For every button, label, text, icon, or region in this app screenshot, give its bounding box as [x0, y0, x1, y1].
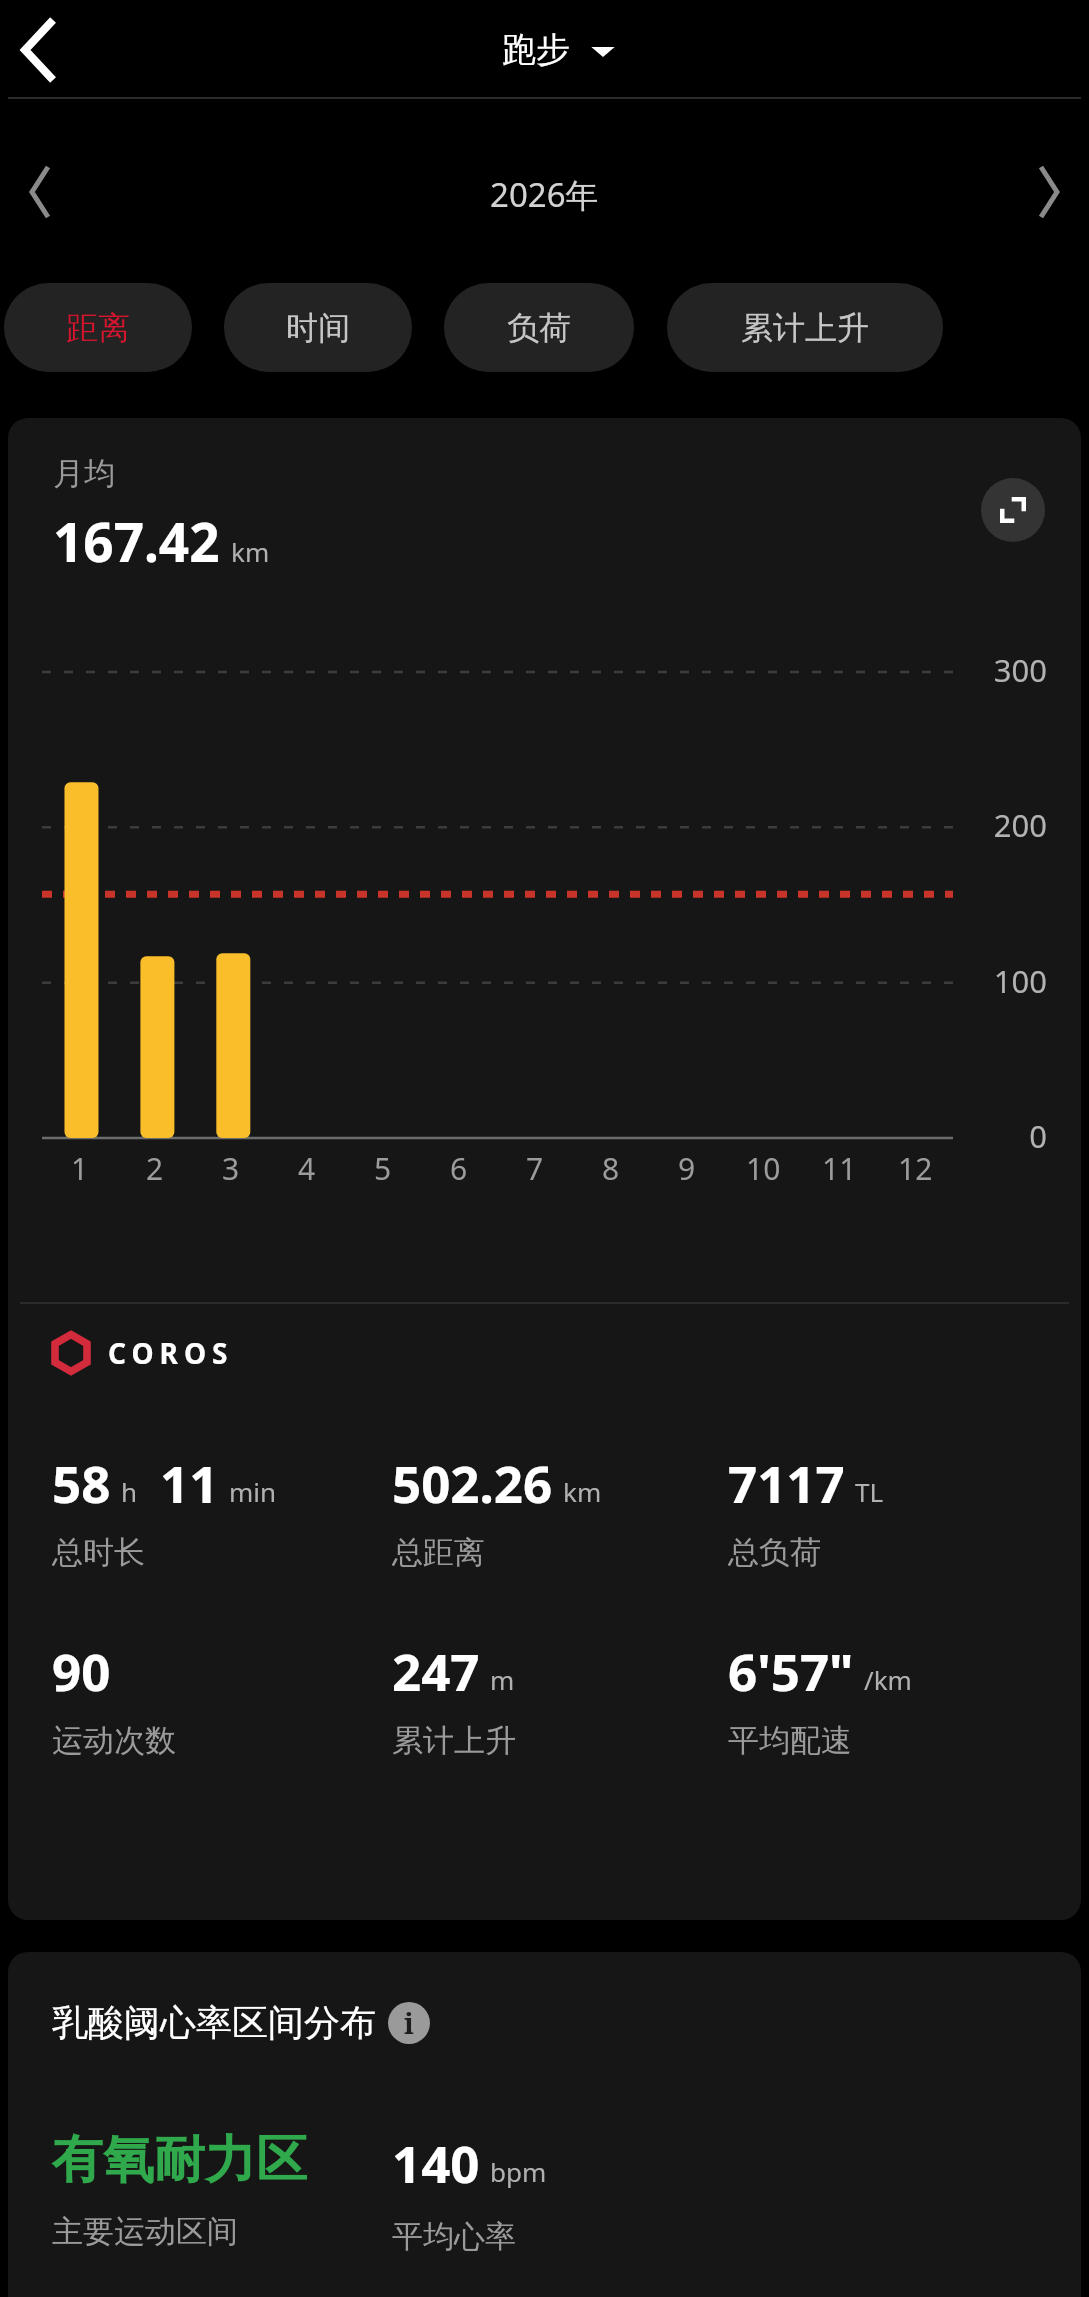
- button[interactable]: 乳酸阈心率区间分布: [52, 2000, 430, 2045]
- staticText: 100: [8, 960, 1047, 1002]
- button[interactable]: 58: [52, 1448, 392, 1572]
- staticText: km: [563, 1474, 602, 1509]
- staticText: 总负荷: [728, 1533, 821, 1572]
- staticText: 5: [374, 1148, 392, 1189]
- staticText: 4: [298, 1148, 316, 1189]
- button[interactable]: Back: [2, 13, 76, 87]
- button[interactable]: 6'57": [728, 1636, 1028, 1760]
- button[interactable]: 负荷: [444, 283, 634, 372]
- staticText: 10: [746, 1148, 781, 1189]
- button[interactable]: 90: [52, 1636, 392, 1760]
- staticText: 58: [52, 1448, 111, 1517]
- staticText: 月均: [53, 454, 115, 493]
- staticText: 7117: [728, 1448, 845, 1517]
- button[interactable]: 7117: [728, 1448, 1028, 1572]
- staticText: 2: [146, 1148, 164, 1189]
- staticText: 167.42: [53, 505, 220, 577]
- staticText: 累计上升: [741, 308, 869, 348]
- staticText: 跑步: [502, 28, 570, 71]
- other: Info: [388, 2002, 430, 2044]
- button[interactable]: 距离: [4, 283, 192, 372]
- staticText: 11: [822, 1148, 857, 1189]
- button[interactable]: 502.26: [392, 1448, 728, 1572]
- button[interactable]: 跑步: [502, 28, 616, 71]
- staticText: h: [121, 1474, 138, 1509]
- staticText: 300: [8, 649, 1047, 691]
- button[interactable]: 累计上升: [667, 283, 943, 372]
- staticText: 1: [71, 1148, 89, 1189]
- button[interactable]: Previous year: [12, 164, 68, 220]
- staticText: i: [404, 2004, 414, 2042]
- staticText: 6'57": [728, 1636, 854, 1705]
- staticText: 6: [450, 1148, 468, 1189]
- staticText: 247: [392, 1636, 480, 1705]
- staticText: 90: [52, 1636, 111, 1705]
- button[interactable]: 有氧耐力区: [52, 2128, 392, 2251]
- staticText: bpm: [490, 2154, 547, 2189]
- staticText: 平均配速: [728, 1721, 852, 1760]
- staticText: 运动次数: [52, 1721, 176, 1760]
- staticText: km: [231, 534, 270, 569]
- button[interactable]: 时间: [224, 283, 412, 372]
- staticText: 主要运动区间: [52, 2212, 238, 2251]
- button[interactable]: Next year: [1021, 164, 1077, 220]
- staticText: /km: [864, 1662, 912, 1697]
- staticText: m: [490, 1662, 515, 1697]
- button[interactable]: Expand chart: [981, 478, 1045, 542]
- button[interactable]: 247: [392, 1636, 728, 1760]
- staticText: TL: [855, 1474, 884, 1509]
- staticText: 8: [602, 1148, 620, 1189]
- staticText: 总时长: [52, 1533, 145, 1572]
- staticText: 总距离: [392, 1533, 485, 1572]
- staticText: 时间: [286, 308, 350, 348]
- staticText: 200: [8, 804, 1047, 846]
- staticText: min: [229, 1474, 277, 1509]
- button[interactable]: 140: [392, 2128, 712, 2256]
- staticText: 距离: [66, 308, 130, 348]
- staticText: 7: [526, 1148, 544, 1189]
- staticText: 平均心率: [392, 2217, 516, 2256]
- staticText: 有氧耐力区: [52, 2128, 307, 2192]
- staticText: 502.26: [392, 1448, 553, 1517]
- staticText: 9: [678, 1148, 696, 1189]
- staticText: 140: [392, 2128, 480, 2197]
- staticText: 乳酸阈心率区间分布: [52, 2000, 376, 2045]
- staticText: 11: [160, 1448, 219, 1517]
- staticText: 12: [898, 1148, 933, 1189]
- button[interactable]: 2026年: [490, 172, 599, 217]
- staticText: 负荷: [507, 308, 571, 348]
- staticText: 0: [8, 1115, 1047, 1157]
- staticText: COROS: [108, 1334, 234, 1372]
- staticText: 3: [222, 1148, 240, 1189]
- staticText: 累计上升: [392, 1721, 516, 1760]
